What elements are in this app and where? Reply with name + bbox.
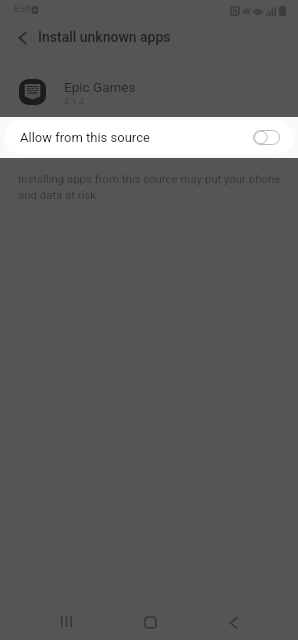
button[interactable]: Navigate up	[0, 22, 38, 52]
button[interactable]: Recent apps	[44, 604, 89, 640]
button[interactable]: Home	[128, 604, 173, 640]
staticText: Install unknown apps	[38, 29, 171, 45]
staticText: Installing apps from this source may put…	[18, 172, 281, 202]
other: Allow from this source	[253, 130, 280, 145]
staticText: Allow from this source	[20, 130, 150, 145]
staticText: 8:36	[14, 4, 32, 15]
button[interactable]: Allow from this source	[0, 117, 298, 158]
button[interactable]: Back	[211, 604, 256, 640]
staticText: 4.1.4	[64, 97, 84, 108]
staticText: Epic Games	[64, 79, 136, 95]
